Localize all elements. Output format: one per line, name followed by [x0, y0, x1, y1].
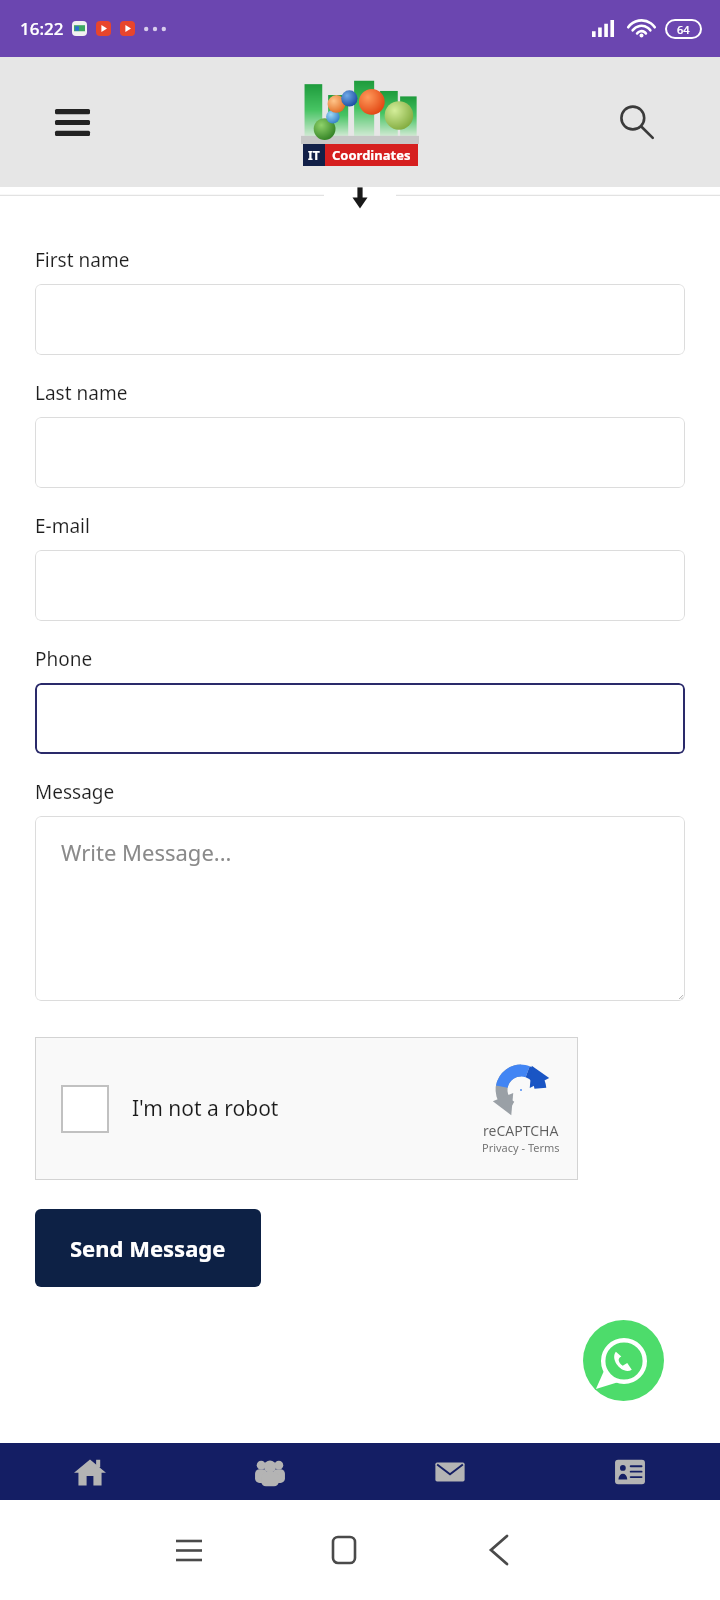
button[interactable] — [35, 683, 685, 754]
button[interactable] — [35, 284, 685, 355]
button[interactable]: Menu — [48, 98, 96, 146]
staticText: Coordinates — [332, 146, 411, 164]
button[interactable]: Messages — [360, 1443, 540, 1500]
button[interactable]: Send Message — [35, 1209, 261, 1287]
button[interactable]: I'm not a robot — [35, 1037, 578, 1180]
button[interactable]: Chat on WhatsApp — [583, 1320, 664, 1401]
button[interactable]: Home — [0, 1443, 180, 1500]
staticText: First name — [35, 247, 130, 273]
button[interactable]: Search — [612, 98, 660, 146]
button[interactable]: Contact — [540, 1443, 720, 1500]
staticText: 16:22 — [20, 17, 64, 40]
button[interactable]: Write Message... — [35, 816, 685, 1001]
staticText: reCAPTCHA — [483, 1121, 559, 1140]
staticText: Write Message... — [61, 837, 232, 867]
staticText: IT — [308, 147, 320, 163]
staticText: Send Message — [70, 1233, 226, 1263]
staticText: 64 — [677, 22, 690, 37]
button[interactable]: Home — [266, 1537, 421, 1563]
staticText: Privacy - Terms — [482, 1140, 560, 1155]
staticText: Message — [35, 779, 115, 805]
button[interactable] — [35, 550, 685, 621]
button[interactable]: Team — [180, 1443, 360, 1500]
button[interactable] — [35, 417, 685, 488]
staticText: I'm not a robot — [132, 1094, 279, 1123]
staticText: E-mail — [35, 513, 90, 539]
button[interactable]: Recents — [111, 1541, 266, 1560]
button[interactable]: Back — [421, 1536, 576, 1564]
staticText: Last name — [35, 380, 128, 406]
staticText: Phone — [35, 646, 93, 672]
